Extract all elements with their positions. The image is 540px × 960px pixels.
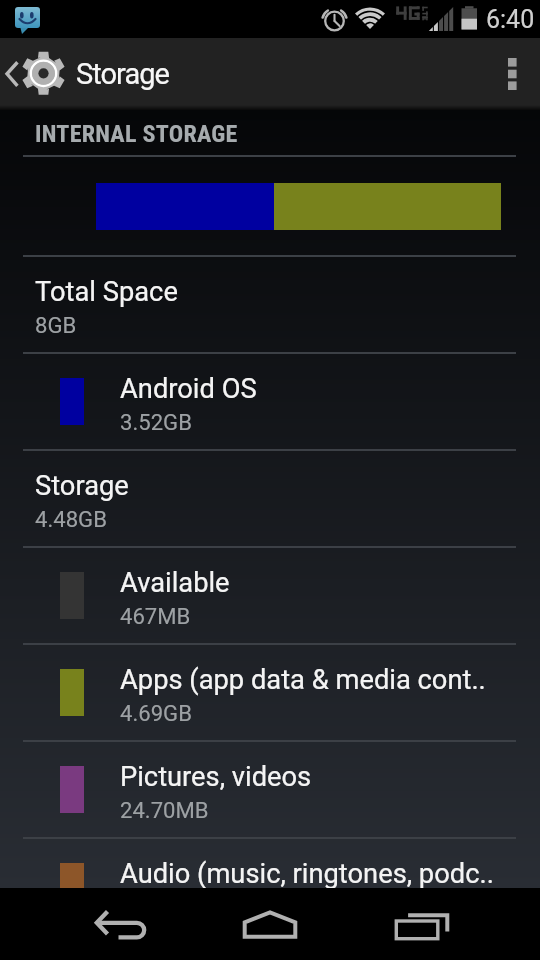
staticText: 24.70MB (120, 797, 209, 823)
staticText: Storage (76, 57, 170, 91)
staticText: Total Space (35, 276, 178, 308)
button[interactable]: Android OS (0, 354, 540, 449)
staticText: 4.69GB (120, 700, 192, 726)
button[interactable]: Storage (0, 451, 540, 546)
button[interactable]: Pictures, videos (0, 742, 540, 837)
staticText: Audio (music, ringtones, podc.. (120, 858, 494, 890)
staticText: 467MB (120, 603, 191, 629)
button[interactable]: Recent apps (360, 888, 540, 960)
button[interactable]: Available (0, 548, 540, 643)
staticText: 3.52GB (120, 409, 192, 435)
button[interactable]: Navigate up (0, 38, 74, 110)
button[interactable]: Home (180, 888, 360, 960)
staticText: 8GB (35, 312, 77, 338)
staticText: Apps (app data & media cont.. (120, 664, 486, 696)
button[interactable]: Back (0, 888, 180, 960)
staticText: INTERNAL STORAGE (35, 120, 238, 148)
button[interactable]: Audio (music, ringtones, podc.. (0, 839, 540, 888)
button[interactable]: Total Space (0, 257, 540, 352)
staticText: Available (120, 567, 230, 599)
staticText: Android OS (120, 373, 257, 405)
button[interactable]: Apps (app data & media cont.. (0, 645, 540, 740)
staticText: Storage (35, 470, 129, 502)
staticText: Pictures, videos (120, 761, 312, 793)
staticText: 6:40 (486, 5, 535, 34)
button[interactable]: More options (484, 38, 540, 110)
staticText: 4.48GB (35, 506, 107, 532)
